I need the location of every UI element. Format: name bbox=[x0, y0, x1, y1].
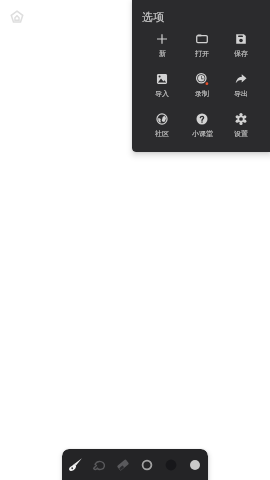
staticText: 选项 bbox=[142, 10, 164, 24]
button[interactable]: 保存 bbox=[222, 31, 260, 58]
button[interactable]: 新 bbox=[143, 31, 181, 58]
staticText: 新 bbox=[159, 49, 166, 58]
button[interactable]: 设置 bbox=[222, 111, 260, 138]
button[interactable]: Color bbox=[160, 454, 182, 476]
button[interactable]: Eraser bbox=[112, 454, 134, 476]
button[interactable]: 导入 bbox=[143, 71, 181, 98]
button[interactable]: Palette bbox=[184, 454, 206, 476]
button[interactable]: Home bbox=[5, 5, 29, 29]
button[interactable]: 导出 bbox=[222, 71, 260, 98]
button[interactable]: Brush bbox=[64, 454, 86, 476]
button[interactable]: 社区 bbox=[143, 111, 181, 138]
staticText: 导出 bbox=[234, 89, 248, 98]
staticText: 导入 bbox=[155, 89, 169, 98]
button[interactable]: 小课堂 bbox=[183, 111, 221, 138]
button[interactable]: Smudge bbox=[88, 454, 110, 476]
button[interactable]: Layers bbox=[136, 454, 158, 476]
staticText: 小课堂 bbox=[192, 129, 213, 138]
staticText: 设置 bbox=[234, 129, 248, 138]
button[interactable]: 打开 bbox=[183, 31, 221, 58]
staticText: 录制 bbox=[195, 89, 209, 98]
staticText: 社区 bbox=[155, 129, 169, 138]
button[interactable]: 录制 bbox=[183, 71, 221, 98]
staticText: 保存 bbox=[234, 49, 248, 58]
staticText: 打开 bbox=[195, 49, 209, 58]
